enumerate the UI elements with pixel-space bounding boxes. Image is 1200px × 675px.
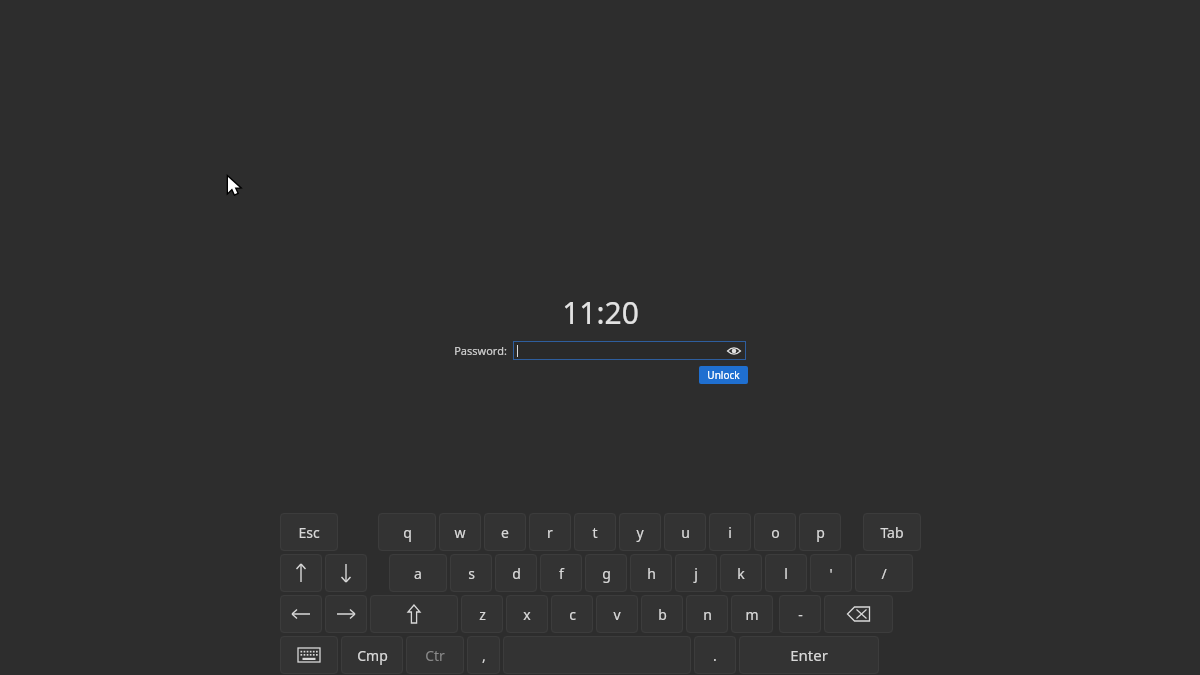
button[interactable]: n xyxy=(686,595,728,633)
button[interactable]: c xyxy=(551,595,593,633)
button[interactable]: Backspace xyxy=(824,595,893,633)
button[interactable]: Ctr xyxy=(406,636,464,674)
staticText: o xyxy=(771,523,780,542)
button[interactable]: Unlock xyxy=(699,366,748,384)
staticText: h xyxy=(647,564,656,583)
button[interactable]: e xyxy=(484,513,526,551)
button[interactable]: j xyxy=(675,554,717,592)
staticText: q xyxy=(403,523,412,542)
button[interactable]: s xyxy=(450,554,492,592)
staticText: Enter xyxy=(790,645,828,665)
button[interactable]: Left xyxy=(280,595,322,633)
staticText: p xyxy=(816,523,825,542)
staticText: , xyxy=(482,646,486,665)
staticText: m xyxy=(745,605,759,624)
button[interactable]: Tab xyxy=(863,513,921,551)
button[interactable]: Esc xyxy=(280,513,338,551)
button[interactable]: g xyxy=(585,554,627,592)
staticText: / xyxy=(881,564,887,583)
staticText: i xyxy=(728,523,732,542)
button[interactable]: y xyxy=(619,513,661,551)
button[interactable]: h xyxy=(630,554,672,592)
staticText: v xyxy=(613,605,621,624)
staticText: b xyxy=(658,605,667,624)
staticText: k xyxy=(737,564,745,583)
button[interactable]: . xyxy=(694,636,736,674)
button[interactable]: Up xyxy=(280,554,322,592)
button[interactable]: Right xyxy=(325,595,367,633)
button[interactable]: ' xyxy=(810,554,852,592)
staticText: f xyxy=(559,564,564,583)
button[interactable]: x xyxy=(506,595,548,633)
button[interactable]: b xyxy=(641,595,683,633)
staticText: e xyxy=(501,523,509,542)
button[interactable]: w xyxy=(439,513,481,551)
button[interactable]: v xyxy=(596,595,638,633)
staticText: Esc xyxy=(298,523,320,542)
staticText: Ctr xyxy=(425,646,445,665)
button[interactable]: Down xyxy=(325,554,367,592)
staticText: j xyxy=(694,564,698,583)
staticText: x xyxy=(523,605,531,624)
button[interactable]: r xyxy=(529,513,571,551)
staticText: ' xyxy=(829,564,833,583)
staticText: Tab xyxy=(880,523,904,542)
staticText: w xyxy=(454,523,466,542)
staticText: g xyxy=(602,564,611,583)
button[interactable]: Keyboard layout xyxy=(280,636,338,674)
staticText: u xyxy=(681,523,690,542)
staticText: t xyxy=(592,523,598,542)
button[interactable]: , xyxy=(467,636,500,674)
button[interactable]: k xyxy=(720,554,762,592)
staticText: l xyxy=(784,564,788,583)
button[interactable]: Shift xyxy=(370,595,458,633)
staticText: n xyxy=(703,605,712,624)
button[interactable]: t xyxy=(574,513,616,551)
staticText: . xyxy=(713,646,717,665)
staticText: d xyxy=(512,564,521,583)
button[interactable]: l xyxy=(765,554,807,592)
button[interactable]: / xyxy=(855,554,913,592)
staticText: y xyxy=(636,523,644,542)
button[interactable]: o xyxy=(754,513,796,551)
staticText: c xyxy=(569,605,576,624)
button[interactable]: Cmp xyxy=(341,636,403,674)
button[interactable]: Enter xyxy=(739,636,879,674)
staticText: Unlock xyxy=(707,368,740,382)
button[interactable]: z xyxy=(461,595,503,633)
staticText: - xyxy=(798,605,803,624)
staticText: r xyxy=(547,523,553,542)
button[interactable]: f xyxy=(540,554,582,592)
button[interactable]: a xyxy=(389,554,447,592)
button[interactable]: Show password xyxy=(513,341,746,360)
button[interactable]: p xyxy=(799,513,841,551)
button[interactable]: d xyxy=(495,554,537,592)
staticText: z xyxy=(479,605,486,624)
staticText: 11:20 xyxy=(562,292,639,333)
button[interactable]: Show password xyxy=(726,343,742,359)
staticText: Password: xyxy=(454,343,507,358)
button[interactable]: i xyxy=(709,513,751,551)
button[interactable]: m xyxy=(731,595,773,633)
button[interactable]: u xyxy=(664,513,706,551)
button[interactable]: q xyxy=(378,513,436,551)
staticText: a xyxy=(414,564,422,583)
staticText: Cmp xyxy=(357,646,388,665)
staticText: s xyxy=(468,564,475,583)
button[interactable]: - xyxy=(779,595,821,633)
